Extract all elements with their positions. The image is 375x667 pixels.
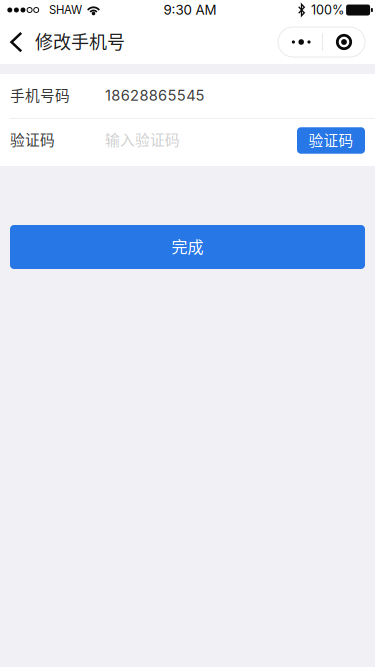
staticText: 100%	[311, 2, 344, 18]
button[interactable]: Close mini program	[323, 27, 365, 57]
staticText: 输入验证码	[105, 128, 180, 150]
staticText: 手机号码	[10, 84, 70, 105]
button[interactable]: Back	[0, 20, 35, 64]
staticText: 修改手机号	[35, 28, 125, 54]
staticText: SHAW	[49, 3, 82, 17]
button[interactable]: 完成	[10, 225, 365, 269]
staticText: 完成	[171, 234, 203, 258]
staticText: 验证码	[10, 128, 55, 150]
staticText: 验证码	[308, 129, 353, 150]
button[interactable]: 验证码	[297, 127, 365, 154]
staticText: 18628865545	[105, 87, 204, 104]
staticText: 9:30 AM	[163, 2, 216, 18]
button[interactable]: More	[278, 27, 322, 57]
